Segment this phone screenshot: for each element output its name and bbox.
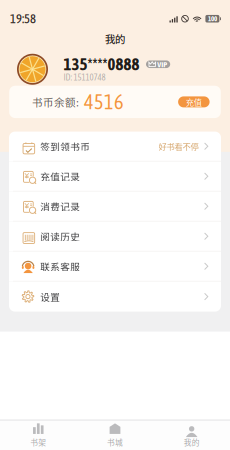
staticText: 阅读历史 bbox=[40, 229, 80, 243]
button[interactable]: 设置 bbox=[9, 282, 221, 312]
button[interactable]: 签到领书币 bbox=[9, 132, 221, 162]
staticText: 设置 bbox=[40, 290, 60, 303]
staticText: 我的 bbox=[105, 31, 125, 46]
button[interactable]: 阅读历史 bbox=[9, 222, 221, 252]
staticText: 135****0888 bbox=[63, 55, 139, 74]
staticText: 书城 bbox=[107, 437, 123, 448]
staticText: 签到领书币 bbox=[40, 139, 90, 153]
staticText: 100 bbox=[208, 15, 217, 23]
button[interactable]: 充值 bbox=[178, 96, 210, 107]
staticText: 消费记录 bbox=[40, 199, 80, 213]
button[interactable]: 书架 bbox=[0, 421, 77, 450]
staticText: 充值 bbox=[186, 96, 202, 108]
staticText: 19:58 bbox=[10, 11, 36, 26]
staticText: 联系客服 bbox=[40, 259, 80, 273]
button[interactable]: 联系客服 bbox=[9, 252, 221, 282]
staticText: ID: 15110748 bbox=[63, 72, 105, 82]
staticText: 我的 bbox=[184, 437, 200, 448]
staticText: 充值记录 bbox=[40, 169, 80, 183]
staticText: 书架 bbox=[30, 437, 46, 448]
staticText: 书币余额: bbox=[32, 94, 79, 110]
button[interactable]: 书城 bbox=[77, 421, 153, 450]
button[interactable]: 充值记录 bbox=[9, 162, 221, 192]
button[interactable]: 我的 bbox=[153, 421, 230, 450]
button[interactable]: 消费记录 bbox=[9, 192, 221, 222]
staticText: 4516 bbox=[84, 90, 124, 113]
staticText: 好书看不停 bbox=[159, 140, 199, 152]
staticText: VIP bbox=[157, 60, 167, 69]
